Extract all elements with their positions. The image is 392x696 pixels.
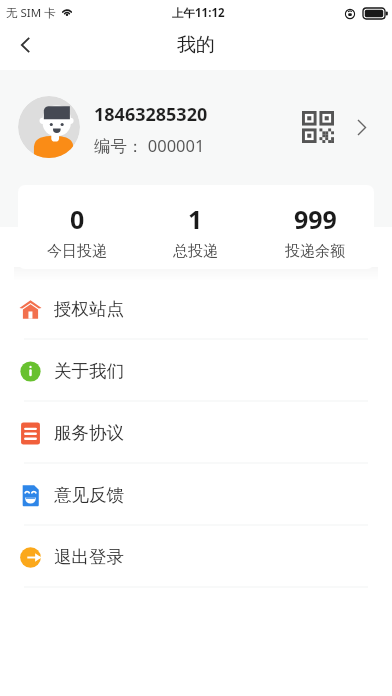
staticText: 服务协议 <box>54 422 124 444</box>
button[interactable]: 1 <box>136 185 255 244</box>
button[interactable]: 999 <box>255 185 374 244</box>
staticText: 关于我们 <box>54 360 124 382</box>
staticText: 1 <box>188 202 203 236</box>
button[interactable]: 意见反馈 <box>0 464 392 526</box>
button[interactable]: 服务协议 <box>0 402 392 464</box>
staticText: 0 <box>70 202 85 236</box>
button[interactable]: 18463285320 <box>0 83 392 171</box>
button[interactable]: 退出登录 <box>0 526 392 588</box>
staticText: 授权站点 <box>54 298 124 320</box>
button[interactable]: 授权站点 <box>0 278 392 340</box>
staticText: 意见反馈 <box>54 484 124 506</box>
staticText: 我的 <box>177 33 215 57</box>
staticText: 999 <box>294 202 337 236</box>
staticText: 退出登录 <box>54 546 124 568</box>
button[interactable]: 关于我们 <box>0 340 392 402</box>
staticText: 无 SIM 卡 <box>6 5 56 21</box>
button[interactable]: QR code <box>302 111 334 143</box>
button[interactable]: 0 <box>18 185 136 244</box>
staticText: 编号： 000001 <box>94 134 205 157</box>
button[interactable]: Back <box>8 28 42 62</box>
staticText: 今日投递 <box>47 242 107 261</box>
staticText: 上午11:12 <box>172 5 225 21</box>
staticText: 投递余额 <box>285 242 345 261</box>
staticText: 18463285320 <box>94 102 208 127</box>
staticText: 总投递 <box>173 242 218 261</box>
